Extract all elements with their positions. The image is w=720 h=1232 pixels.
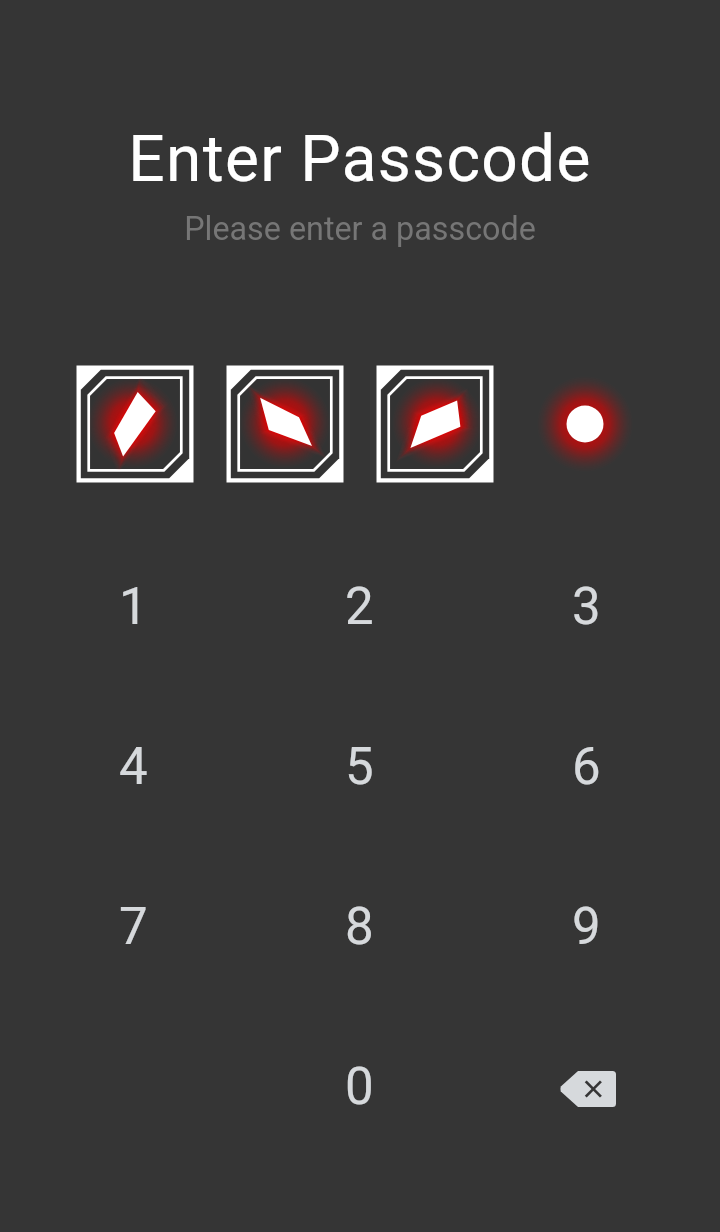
button[interactable]: 1 xyxy=(20,527,246,687)
staticText: 2 xyxy=(345,577,374,637)
staticText: 4 xyxy=(119,737,148,797)
staticText: 5 xyxy=(345,737,374,797)
button[interactable]: 0 xyxy=(246,1007,473,1167)
staticText: 8 xyxy=(345,897,374,957)
staticText: 0 xyxy=(345,1057,374,1117)
staticText: 6 xyxy=(572,737,601,797)
button[interactable]: 6 xyxy=(473,687,700,847)
button[interactable]: Delete xyxy=(473,1007,700,1167)
button[interactable]: 9 xyxy=(473,847,700,1007)
button[interactable]: 4 xyxy=(20,687,246,847)
staticText: 3 xyxy=(572,577,601,637)
button[interactable]: 3 xyxy=(473,527,700,687)
staticText: Please enter a passcode xyxy=(0,210,720,248)
staticText: Enter Passcode xyxy=(0,122,720,197)
button[interactable]: 7 xyxy=(20,847,246,1007)
button[interactable]: 5 xyxy=(246,687,473,847)
button[interactable]: 8 xyxy=(246,847,473,1007)
staticText: 9 xyxy=(572,897,601,957)
button[interactable]: 2 xyxy=(246,527,473,687)
staticText: 7 xyxy=(119,897,148,957)
staticText: 1 xyxy=(119,577,148,637)
